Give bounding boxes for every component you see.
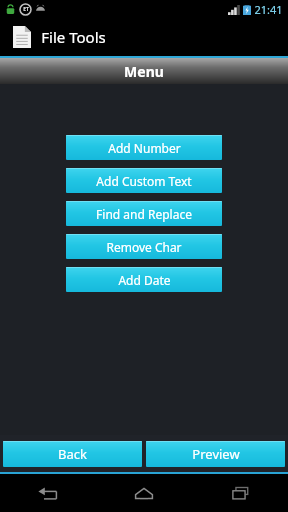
button[interactable]: Remove Char: [66, 234, 222, 259]
staticText: Menu: [124, 62, 164, 81]
button[interactable]: Add Date: [66, 267, 222, 292]
button[interactable]: Back: [3, 441, 142, 467]
staticText: Remove Char: [106, 239, 182, 255]
staticText: File Tools: [41, 27, 106, 47]
staticText: Preview: [192, 445, 240, 463]
button[interactable]: Home: [96, 474, 192, 512]
button[interactable]: Preview: [146, 441, 285, 467]
staticText: 21:41: [254, 2, 283, 17]
staticText: Add Number: [108, 140, 181, 156]
staticText: Find and Replace: [96, 206, 192, 222]
button[interactable]: Back: [0, 474, 96, 512]
staticText: Back: [58, 445, 87, 463]
button[interactable]: Find and Replace: [66, 201, 222, 226]
staticText: ET: [23, 6, 29, 13]
staticText: Add Custom Text: [96, 173, 192, 189]
button[interactable]: Recent apps: [192, 474, 288, 512]
button[interactable]: Add Number: [66, 135, 222, 160]
staticText: Add Date: [118, 272, 171, 288]
button[interactable]: Add Custom Text: [66, 168, 222, 193]
